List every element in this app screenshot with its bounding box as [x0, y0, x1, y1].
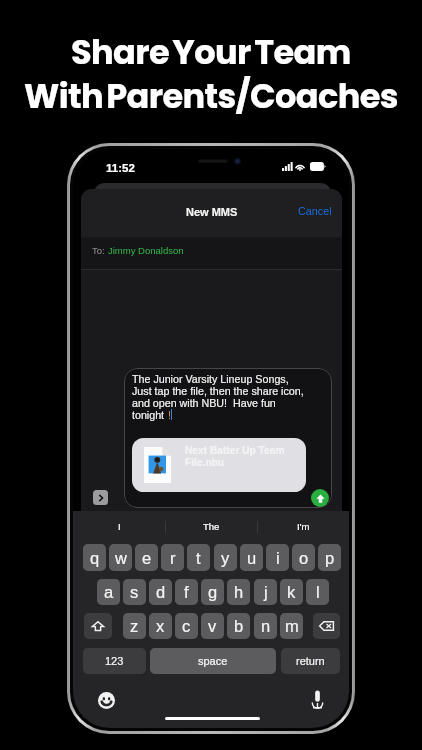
staticText: The: [203, 521, 220, 532]
button[interactable]: space: [150, 648, 276, 674]
button[interactable]: r: [161, 544, 184, 571]
staticText: v: [208, 617, 217, 635]
button[interactable]: I'm: [258, 511, 349, 542]
staticText: d: [156, 583, 166, 601]
staticText: !: [168, 409, 171, 421]
button[interactable]: d: [149, 579, 172, 605]
button[interactable]: I: [73, 511, 165, 542]
button[interactable]: To:: [81, 238, 342, 269]
button[interactable]: Shift: [84, 613, 112, 639]
button[interactable]: s: [123, 579, 146, 605]
button[interactable]: c: [175, 613, 198, 639]
button[interactable]: Dictate: [311, 690, 324, 709]
staticText: f: [184, 583, 189, 601]
staticText: n: [261, 617, 271, 635]
staticText: a: [104, 583, 114, 601]
button[interactable]: v: [201, 613, 224, 639]
staticText: q: [90, 549, 100, 567]
staticText: j: [264, 583, 268, 601]
button[interactable]: m: [280, 613, 303, 639]
button[interactable]: 123: [83, 648, 146, 674]
staticText: m: [285, 617, 299, 635]
staticText: z: [130, 617, 139, 635]
staticText: t: [196, 549, 201, 567]
staticText: With: [24, 73, 103, 120]
button[interactable]: h: [227, 579, 250, 605]
staticText: w: [115, 549, 127, 567]
staticText: 123: [105, 655, 124, 667]
button[interactable]: y: [214, 544, 237, 571]
staticText: Next Batter Up Team File.nbu: [185, 445, 285, 469]
staticText: h: [234, 583, 244, 601]
staticText: b: [234, 617, 244, 635]
staticText: Parents/Coaches: [106, 73, 398, 120]
button[interactable]: o: [292, 544, 315, 571]
staticText: Your: [172, 29, 251, 76]
staticText: Share: [71, 29, 169, 76]
staticText: u: [247, 549, 257, 567]
staticText: Jimmy Donaldson: [108, 245, 184, 256]
button[interactable]: return: [281, 648, 340, 674]
staticText: New MMS: [186, 206, 238, 218]
button[interactable]: b: [227, 613, 250, 639]
button[interactable]: l: [306, 579, 329, 605]
button[interactable]: q: [83, 544, 106, 571]
staticText: e: [142, 549, 152, 567]
button[interactable]: Backspace: [313, 613, 340, 639]
button[interactable]: p: [318, 544, 341, 571]
staticText: Team: [254, 29, 351, 76]
staticText: i: [276, 549, 280, 567]
staticText: tonight: [132, 409, 168, 421]
staticText: Cancel: [298, 205, 332, 217]
staticText: l: [316, 583, 320, 601]
button[interactable]: The: [166, 511, 257, 542]
staticText: y: [221, 549, 230, 567]
staticText: g: [208, 583, 218, 601]
button[interactable]: e: [135, 544, 158, 571]
button[interactable]: u: [240, 544, 263, 571]
staticText: s: [130, 583, 139, 601]
button[interactable]: k: [280, 579, 303, 605]
button[interactable]: z: [123, 613, 146, 639]
button[interactable]: Expand: [93, 490, 108, 505]
staticText: r: [170, 549, 176, 567]
staticText: 11:52: [106, 162, 135, 175]
button[interactable]: g: [201, 579, 224, 605]
staticText: p: [325, 549, 335, 567]
staticText: To:: [92, 245, 108, 256]
staticText: o: [299, 549, 309, 567]
staticText: The Junior Varsity Lineup Songs, Just ta…: [132, 373, 304, 409]
staticText: c: [182, 617, 191, 635]
button[interactable]: t: [187, 544, 210, 571]
button[interactable]: x: [149, 613, 172, 639]
staticText: return: [296, 655, 325, 667]
button[interactable]: n: [254, 613, 277, 639]
button[interactable]: j: [254, 579, 277, 605]
button[interactable]: Cancel: [288, 197, 342, 225]
staticText: I'm: [297, 521, 310, 532]
staticText: x: [156, 617, 165, 635]
staticText: space: [198, 655, 228, 667]
staticText: I: [118, 521, 121, 532]
button[interactable]: Emoji: [98, 692, 115, 709]
staticText: k: [287, 583, 296, 601]
button[interactable]: Next Batter Up Team File.nbu: [132, 438, 306, 492]
button[interactable]: f: [175, 579, 198, 605]
button[interactable]: w: [109, 544, 132, 571]
button[interactable]: i: [266, 544, 289, 571]
button[interactable]: a: [97, 579, 120, 605]
button[interactable]: Send: [311, 489, 329, 507]
